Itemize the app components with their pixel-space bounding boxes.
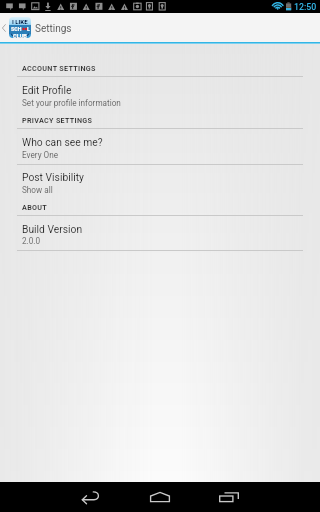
- staticText: Every One: [22, 150, 59, 160]
- staticText: CLUB: [13, 33, 27, 38]
- staticText: PRIVACY SETTINGS: [22, 116, 93, 124]
- button[interactable]: Edit Profile: [0, 84, 320, 108]
- staticText: Settings: [35, 23, 72, 35]
- staticText: 12:50: [294, 2, 317, 12]
- button[interactable]: Post Visibility: [0, 171, 320, 195]
- staticText: I LIKE: [12, 18, 28, 25]
- staticText: Edit Profile: [22, 84, 72, 96]
- staticText: ACCOUNT SETTINGS: [22, 64, 96, 72]
- button[interactable]: Navigate up: [0, 13, 320, 42]
- staticText: SCH: [11, 26, 22, 32]
- button[interactable]: Back: [69, 486, 114, 508]
- button[interactable]: Home: [137, 486, 182, 508]
- staticText: 2.0.0: [22, 236, 41, 246]
- button[interactable]: Who can see me?: [0, 136, 320, 160]
- staticText: Who can see me?: [22, 136, 103, 148]
- staticText: ABOUT: [22, 203, 48, 211]
- button[interactable]: Build Version: [0, 223, 320, 246]
- button[interactable]: Recent apps: [206, 486, 251, 508]
- staticText: L: [27, 26, 30, 32]
- staticText: Show all: [22, 185, 53, 195]
- staticText: Post Visibility: [22, 171, 84, 183]
- staticText: Set your profile information: [22, 98, 121, 108]
- staticText: Build Version: [22, 223, 83, 235]
